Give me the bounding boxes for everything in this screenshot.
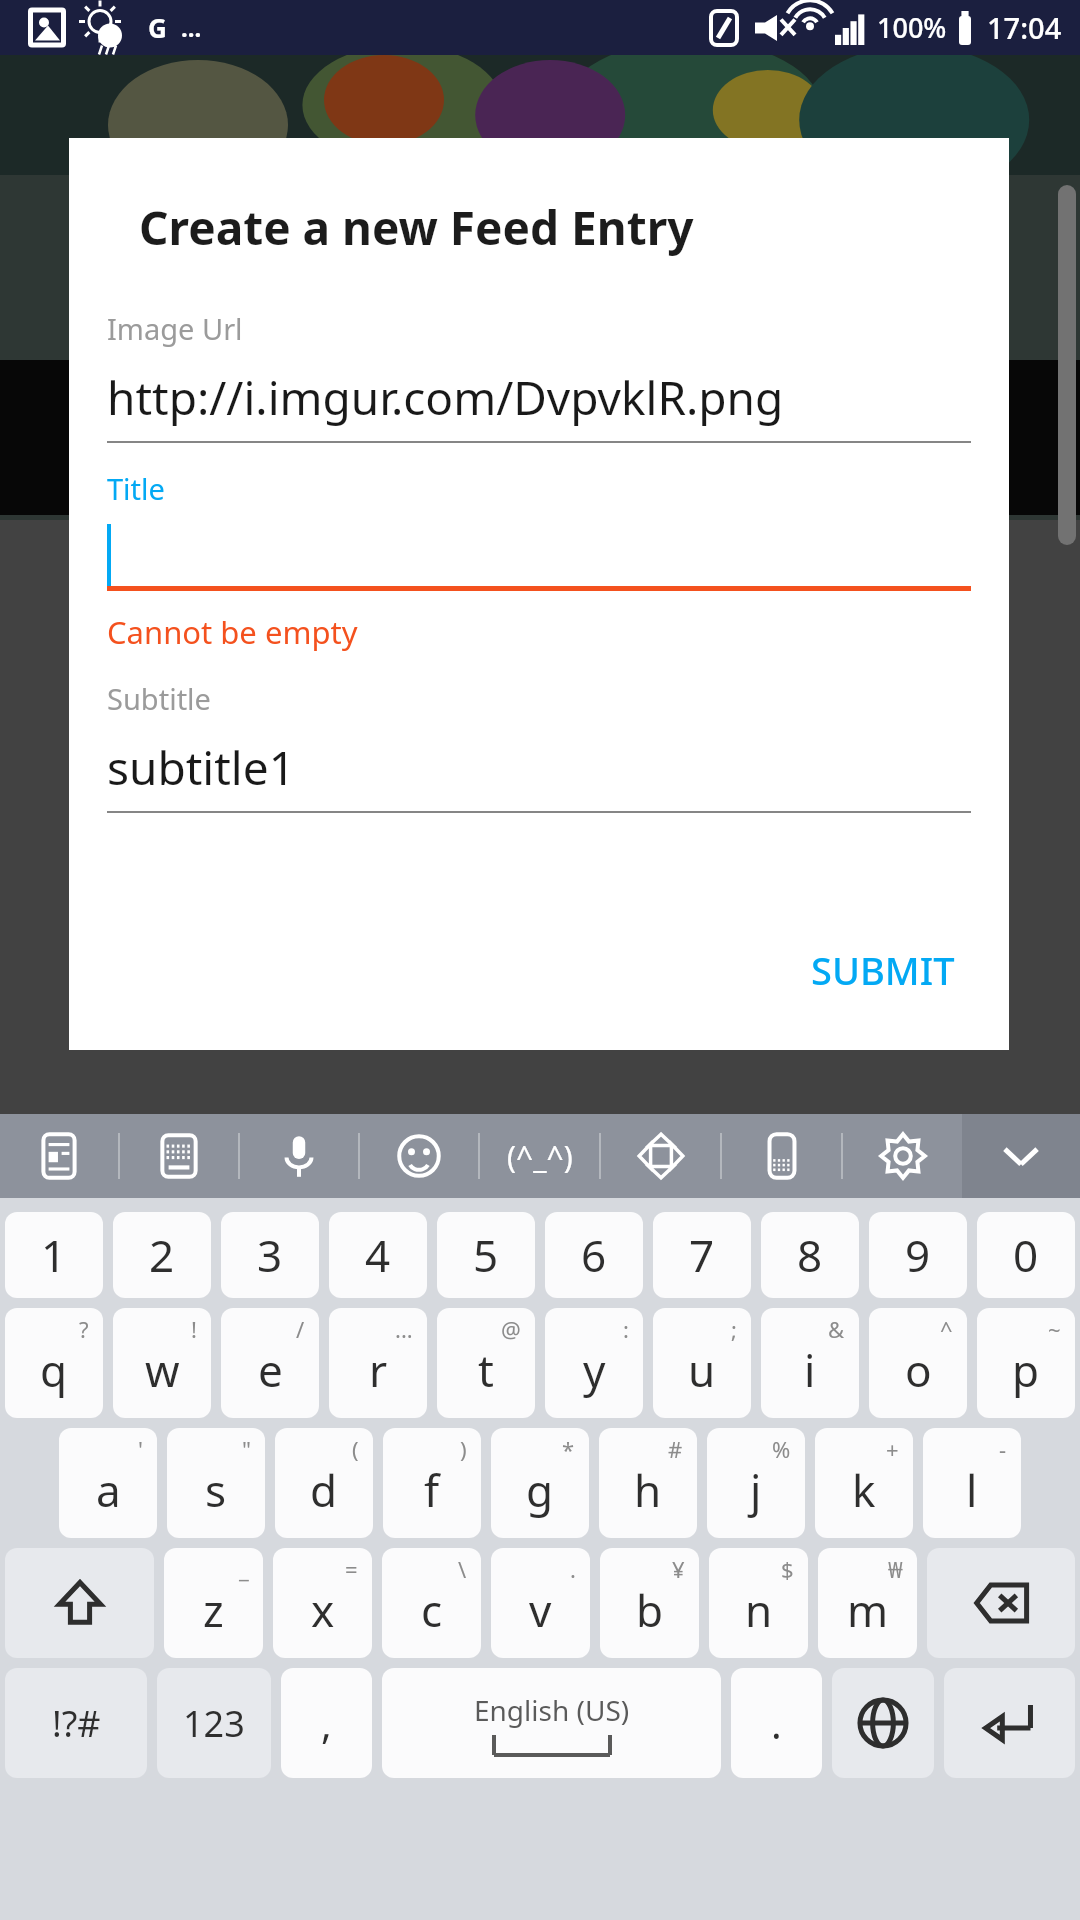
staticText: 7 xyxy=(689,1225,715,1285)
button[interactable]: ~ xyxy=(977,1308,1075,1418)
staticText: 17:04 xyxy=(987,8,1062,47)
button[interactable]: 1 xyxy=(5,1212,103,1298)
button[interactable]: Shift xyxy=(5,1548,154,1658)
button[interactable]: & xyxy=(761,1308,859,1418)
button[interactable]: $ xyxy=(709,1548,808,1658)
button[interactable]: 6 xyxy=(545,1212,643,1298)
staticText: ¥ xyxy=(672,1554,685,1584)
button[interactable]: # xyxy=(599,1428,697,1538)
button[interactable]: 9 xyxy=(869,1212,967,1298)
staticText: d xyxy=(310,1460,338,1520)
staticText: h xyxy=(634,1460,662,1520)
button[interactable]: !?# xyxy=(5,1668,147,1778)
staticText: ( xyxy=(352,1434,359,1464)
staticText: G xyxy=(148,10,167,45)
staticText: ! xyxy=(191,1314,197,1344)
button[interactable]: ; xyxy=(653,1308,751,1418)
staticText: u xyxy=(688,1340,716,1400)
button[interactable]: 5 xyxy=(437,1212,535,1298)
button[interactable]: Enter xyxy=(944,1668,1075,1778)
button[interactable]: Settings xyxy=(843,1114,962,1198)
button[interactable]: ( xyxy=(275,1428,373,1538)
button[interactable]: . xyxy=(731,1668,822,1778)
button[interactable]: _ xyxy=(164,1548,263,1658)
staticText: & xyxy=(828,1314,845,1344)
button[interactable]: ) xyxy=(383,1428,481,1538)
staticText: 0 xyxy=(1013,1225,1039,1285)
button[interactable]: = xyxy=(273,1548,372,1658)
button[interactable]: 8 xyxy=(761,1212,859,1298)
button[interactable]: Voice input xyxy=(240,1114,358,1198)
button[interactable]: ₩ xyxy=(818,1548,917,1658)
button[interactable]: + xyxy=(815,1428,913,1538)
staticText: p xyxy=(1012,1340,1040,1400)
staticText: i xyxy=(804,1340,816,1400)
button[interactable]: ^ xyxy=(869,1308,967,1418)
button[interactable]: Cursor control xyxy=(601,1114,720,1198)
button[interactable]: English (US) xyxy=(382,1668,721,1778)
button[interactable]: % xyxy=(707,1428,805,1538)
button[interactable]: - xyxy=(923,1428,1021,1538)
staticText: 2 xyxy=(149,1225,175,1285)
staticText: e xyxy=(258,1340,283,1400)
button[interactable]: SUBMIT xyxy=(795,932,971,1008)
button[interactable]: Emoji xyxy=(360,1114,478,1198)
button[interactable]: Clipboard xyxy=(0,1114,118,1198)
button[interactable]: , xyxy=(281,1668,372,1778)
staticText: w xyxy=(145,1340,180,1400)
button[interactable]: ¥ xyxy=(600,1548,699,1658)
button[interactable]: @ xyxy=(437,1308,535,1418)
staticText: 123 xyxy=(183,1699,245,1748)
button[interactable]: 123 xyxy=(157,1668,271,1778)
button[interactable]: : xyxy=(545,1308,643,1418)
staticText: m xyxy=(847,1580,889,1640)
button[interactable]: 7 xyxy=(653,1212,751,1298)
staticText: Title xyxy=(107,469,165,508)
staticText: q xyxy=(40,1340,68,1400)
button[interactable]: ! xyxy=(113,1308,211,1418)
staticText: subtitle1 xyxy=(107,736,295,799)
button[interactable]: ? xyxy=(5,1308,103,1418)
button[interactable]: " xyxy=(167,1428,265,1538)
button[interactable]: Change language xyxy=(832,1668,934,1778)
staticText: @ xyxy=(501,1314,521,1344)
staticText: ? xyxy=(79,1314,89,1344)
staticText: # xyxy=(668,1434,683,1464)
staticText: 100% xyxy=(877,9,947,46)
staticText: English (US) xyxy=(474,1691,630,1729)
button[interactable]: 4 xyxy=(329,1212,427,1298)
button[interactable]: 2 xyxy=(113,1212,211,1298)
button[interactable]: Emoticons xyxy=(480,1114,599,1198)
staticText: _ xyxy=(239,1554,249,1584)
staticText: ... xyxy=(181,11,202,44)
staticText: s xyxy=(205,1460,227,1520)
button[interactable]: Backspace xyxy=(927,1548,1075,1658)
staticText: Subtitle xyxy=(107,679,211,718)
button[interactable]: 0 xyxy=(977,1212,1075,1298)
staticText: ; xyxy=(731,1314,737,1344)
staticText: 1 xyxy=(41,1225,67,1285)
button[interactable]: Keyboard layout xyxy=(120,1114,238,1198)
staticText: 9 xyxy=(905,1225,931,1285)
staticText: $ xyxy=(781,1554,794,1584)
staticText: 8 xyxy=(797,1225,823,1285)
staticText: / xyxy=(296,1314,305,1344)
button[interactable]: * xyxy=(491,1428,589,1538)
button[interactable]: One-handed mode xyxy=(722,1114,841,1198)
staticText: . xyxy=(570,1554,576,1584)
staticText: + xyxy=(886,1434,899,1464)
staticText: " xyxy=(242,1434,251,1464)
staticText: ^ xyxy=(940,1314,953,1344)
button[interactable]: / xyxy=(221,1308,319,1418)
button[interactable]: ... xyxy=(329,1308,427,1418)
button[interactable]: Hide keyboard xyxy=(962,1114,1080,1198)
button[interactable]: 3 xyxy=(221,1212,319,1298)
button[interactable]: \ xyxy=(382,1548,481,1658)
staticText: f xyxy=(424,1460,440,1520)
staticText: j xyxy=(750,1460,762,1520)
button[interactable]: . xyxy=(491,1548,590,1658)
staticText: ' xyxy=(138,1434,143,1464)
button[interactable]: ' xyxy=(59,1428,157,1538)
staticText: Create a new Feed Entry xyxy=(139,196,694,259)
staticText: http://i.imgur.com/DvpvklR.png xyxy=(107,366,784,429)
